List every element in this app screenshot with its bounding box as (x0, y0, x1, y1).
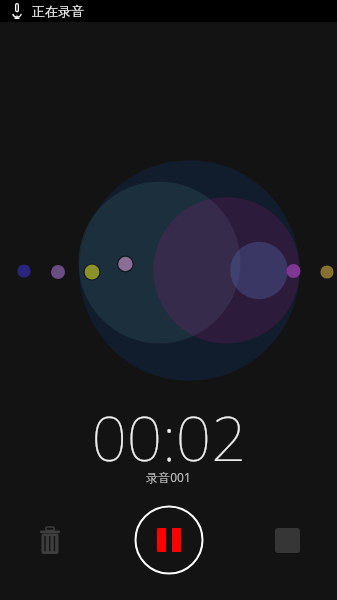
staticText: 录音001 (146, 469, 191, 485)
other: Recording (12, 3, 22, 19)
staticText: 00:02 (91, 395, 247, 479)
button[interactable]: Pause (134, 505, 204, 575)
button[interactable]: Stop (263, 516, 312, 565)
staticText: 正在录音 (32, 3, 84, 19)
button[interactable]: Delete (25, 516, 74, 565)
